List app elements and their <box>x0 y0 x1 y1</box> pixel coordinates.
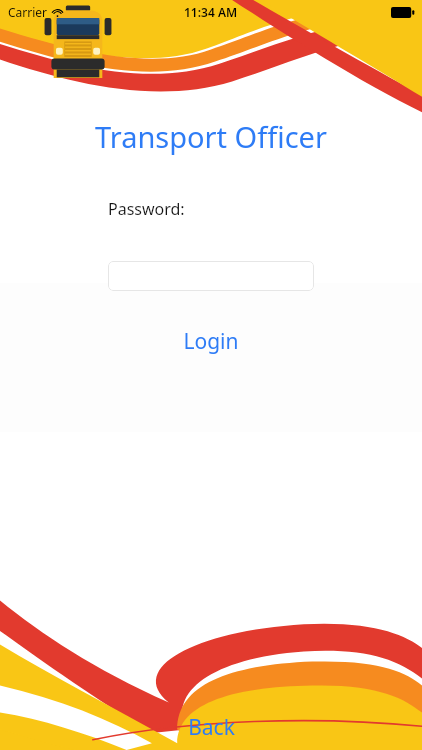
staticText: Login <box>183 327 239 356</box>
button[interactable] <box>108 261 314 291</box>
staticText: 11:34 AM <box>184 4 238 20</box>
button[interactable]: Back <box>0 704 422 750</box>
button[interactable]: Login <box>0 324 422 358</box>
staticText: Back <box>188 713 235 742</box>
staticText: Transport Officer <box>95 117 327 156</box>
staticText: Carrier <box>8 4 48 20</box>
staticText: Password: <box>108 198 185 220</box>
